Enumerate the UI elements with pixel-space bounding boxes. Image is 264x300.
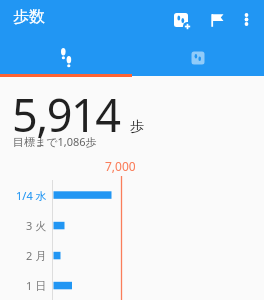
staticText: 3 火: [26, 218, 47, 233]
staticText: 歩数: [13, 7, 45, 27]
staticText: 目標まで1,086歩: [13, 134, 97, 149]
button[interactable]: [0, 40, 132, 76]
button[interactable]: [238, 7, 256, 25]
staticText: 2 月: [26, 248, 47, 263]
staticText: 7,000: [105, 158, 136, 174]
staticText: 5,914: [12, 84, 120, 145]
button[interactable]: [168, 7, 194, 33]
staticText: 歩: [130, 118, 144, 136]
button[interactable]: [205, 7, 231, 33]
button[interactable]: [132, 40, 264, 76]
staticText: 1/4 水: [16, 188, 47, 203]
staticText: 1 日: [26, 278, 47, 293]
